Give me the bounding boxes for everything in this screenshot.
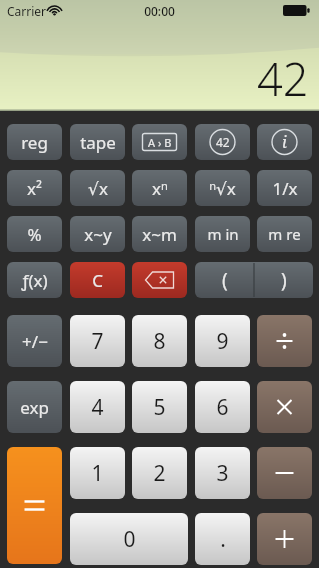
staticText: 2 — [153, 459, 166, 488]
button[interactable]: exp — [7, 381, 62, 433]
staticText: m in — [207, 224, 239, 244]
button[interactable]: . — [195, 513, 250, 565]
staticText: ( — [222, 267, 228, 293]
staticText: . — [220, 525, 226, 554]
staticText: xⁿ — [152, 177, 168, 200]
button[interactable]: 4 — [70, 381, 125, 433]
staticText: √x — [88, 177, 108, 200]
staticText: +/− — [22, 330, 48, 353]
button[interactable]: ) — [254, 262, 313, 298]
button[interactable]: 3 — [195, 447, 250, 499]
button[interactable]: Info — [257, 124, 312, 160]
staticText: exp — [20, 396, 49, 419]
staticText: 3 — [216, 459, 229, 488]
staticText: 5 — [153, 393, 166, 422]
staticText: 9 — [216, 327, 229, 356]
button[interactable]: C — [70, 262, 125, 298]
button[interactable]: reg — [7, 124, 62, 160]
staticText: 42 — [257, 48, 309, 109]
staticText: ) — [281, 267, 287, 293]
button[interactable]: x~m — [132, 216, 187, 252]
button[interactable]: tape — [70, 124, 125, 160]
staticText: x~m — [142, 223, 177, 246]
button[interactable]: m in — [195, 216, 250, 252]
staticText: 00:00 — [0, 3, 319, 19]
button[interactable]: ⁿ√x — [195, 170, 250, 206]
button[interactable]: Subtract — [257, 447, 312, 499]
button[interactable]: Equals — [7, 447, 62, 564]
button[interactable]: 5 — [132, 381, 187, 433]
staticText: reg — [21, 131, 48, 154]
button[interactable]: x~y — [70, 216, 125, 252]
button[interactable]: ƒ(x) — [7, 262, 62, 298]
button[interactable]: % — [7, 216, 62, 252]
staticText: x² — [27, 177, 42, 200]
button[interactable]: ( — [195, 262, 254, 298]
staticText: 0 — [123, 525, 136, 554]
staticText: tape — [80, 131, 116, 154]
button[interactable]: x² — [7, 170, 62, 206]
staticText: 7 — [91, 327, 104, 356]
staticText: 1/x — [272, 177, 298, 200]
button[interactable]: 0 — [70, 513, 188, 565]
staticText: i — [282, 131, 287, 153]
staticText: 42 — [216, 134, 230, 150]
staticText: x~y — [84, 223, 112, 246]
button[interactable]: 8 — [132, 315, 187, 367]
button[interactable]: 9 — [195, 315, 250, 367]
staticText: 8 — [153, 327, 166, 356]
staticText: Carrier — [7, 3, 47, 19]
button[interactable]: Multiply — [257, 381, 312, 433]
staticText: ƒ(x) — [21, 269, 48, 292]
button[interactable]: 2 — [132, 447, 187, 499]
button[interactable]: 7 — [70, 315, 125, 367]
staticText: ⁿ√x — [209, 177, 236, 200]
button[interactable]: Backspace — [132, 262, 187, 298]
button[interactable]: m re — [257, 216, 312, 252]
button[interactable]: 1/x — [257, 170, 312, 206]
staticText: 4 — [91, 393, 104, 422]
button[interactable]: 6 — [195, 381, 250, 433]
staticText: A › B — [148, 135, 172, 150]
staticText: C — [92, 269, 103, 292]
button[interactable]: Convert A to B — [132, 124, 187, 160]
staticText: % — [27, 223, 42, 246]
button[interactable]: Add — [257, 513, 312, 565]
button[interactable]: Constant 42 — [195, 124, 250, 160]
staticText: 1 — [91, 459, 104, 488]
staticText: m re — [268, 224, 301, 244]
button[interactable]: 1 — [70, 447, 125, 499]
staticText: 6 — [216, 393, 229, 422]
button[interactable]: +/− — [7, 315, 62, 367]
button[interactable]: √x — [70, 170, 125, 206]
button[interactable]: xⁿ — [132, 170, 187, 206]
button[interactable]: Divide — [257, 315, 312, 367]
